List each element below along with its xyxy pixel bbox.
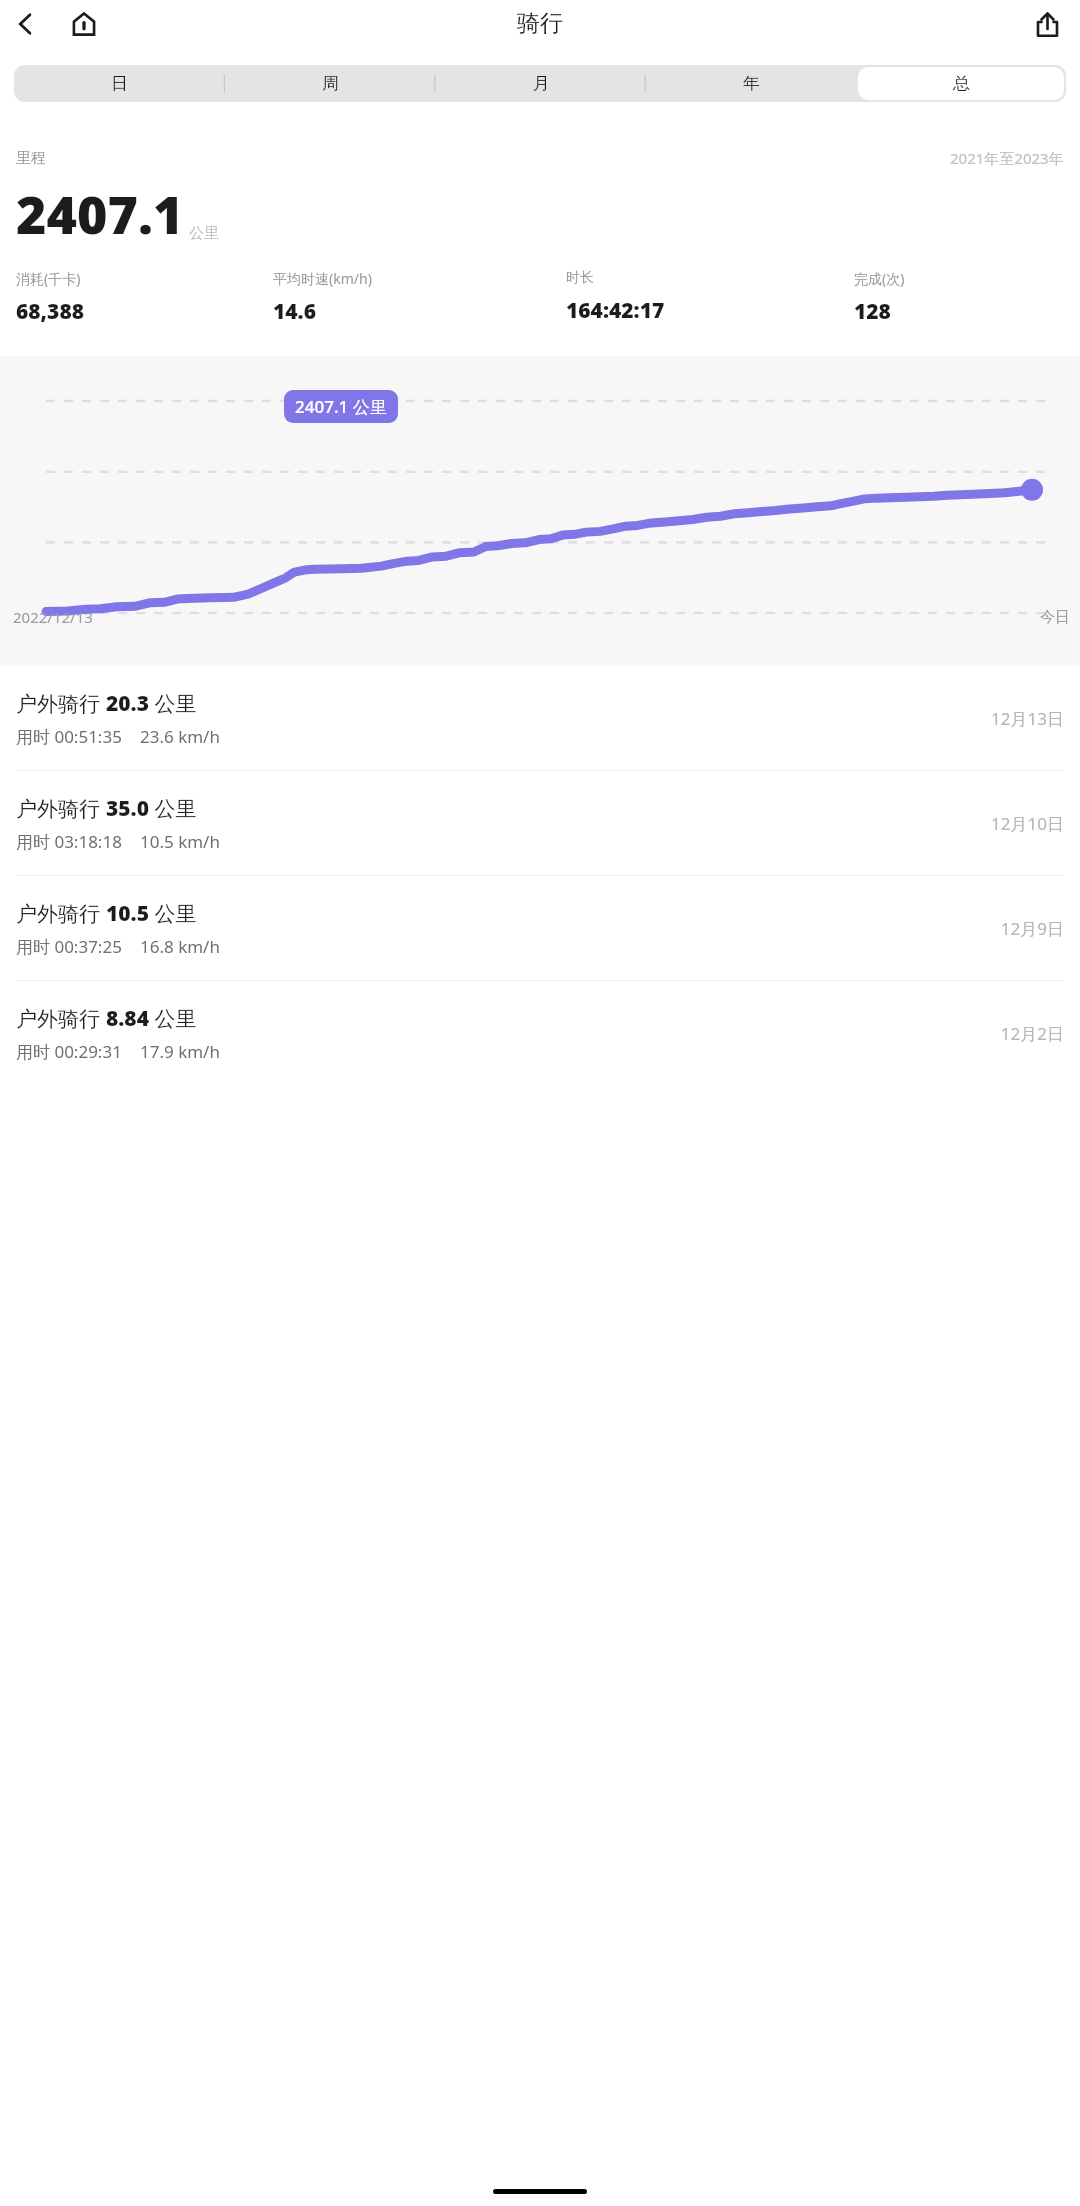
- staticText: 23.6 km/h: [140, 725, 220, 748]
- staticText: 年: [743, 73, 760, 94]
- staticText: 2022/12/13: [13, 607, 93, 627]
- staticText: 8.84: [106, 1004, 149, 1033]
- staticText: 16.8 km/h: [140, 935, 220, 958]
- staticText: 10.5 km/h: [140, 830, 220, 853]
- staticText: 里程: [16, 149, 46, 168]
- button[interactable]: 日: [16, 67, 223, 100]
- button[interactable]: Share: [1024, 1, 1070, 47]
- staticText: 35.0: [106, 794, 149, 823]
- staticText: 月: [533, 73, 550, 94]
- staticText: 用时 03:18:18: [16, 830, 122, 853]
- staticText: 公里: [149, 1004, 197, 1033]
- staticText: 公里: [149, 794, 197, 823]
- staticText: 今日: [1040, 608, 1070, 627]
- staticText: 用时 00:51:35: [16, 725, 122, 748]
- staticText: 骑行: [517, 9, 563, 38]
- button[interactable]: Back: [4, 2, 48, 46]
- staticText: 2407.1: [16, 178, 184, 249]
- staticText: 68,388: [16, 297, 85, 326]
- button[interactable]: Home: [62, 2, 106, 46]
- staticText: 10.5: [106, 899, 149, 928]
- staticText: 12月9日: [1000, 917, 1064, 940]
- staticText: 户外骑行: [16, 689, 106, 718]
- staticText: 用时 00:29:31: [16, 1040, 122, 1063]
- staticText: 14.6: [273, 297, 316, 326]
- button[interactable]: 年: [648, 67, 854, 100]
- staticText: 128: [854, 297, 891, 326]
- staticText: 户外骑行: [16, 899, 106, 928]
- staticText: 公里: [149, 899, 197, 928]
- staticText: 时长: [566, 269, 594, 287]
- staticText: 周: [322, 73, 339, 94]
- staticText: 户外骑行: [16, 794, 106, 823]
- staticText: 164:42:17: [566, 296, 665, 325]
- button[interactable]: 户外骑行: [0, 981, 1080, 1085]
- staticText: 日: [111, 73, 128, 94]
- staticText: 总: [953, 73, 970, 94]
- staticText: 20.3: [106, 689, 149, 718]
- staticText: 12月13日: [991, 707, 1064, 730]
- button[interactable]: 月: [438, 67, 644, 100]
- staticText: 公里: [189, 224, 219, 243]
- staticText: 17.9 km/h: [140, 1040, 220, 1063]
- button[interactable]: 户外骑行: [0, 771, 1080, 875]
- staticText: 用时 00:37:25: [16, 935, 122, 958]
- button[interactable]: 户外骑行: [0, 666, 1080, 770]
- staticText: 完成(次): [854, 269, 905, 288]
- staticText: 2021年至2023年: [950, 148, 1064, 168]
- button[interactable]: 周: [227, 67, 434, 100]
- staticText: 户外骑行: [16, 1004, 106, 1033]
- button[interactable]: 户外骑行: [0, 876, 1080, 980]
- staticText: 12月10日: [991, 812, 1064, 835]
- staticText: 公里: [149, 689, 197, 718]
- staticText: 12月2日: [1000, 1022, 1064, 1045]
- staticText: 平均时速(km/h): [273, 269, 372, 288]
- button[interactable]: 总: [858, 67, 1064, 100]
- staticText: 2407.1 公里: [295, 395, 387, 418]
- staticText: 消耗(千卡): [16, 269, 81, 288]
